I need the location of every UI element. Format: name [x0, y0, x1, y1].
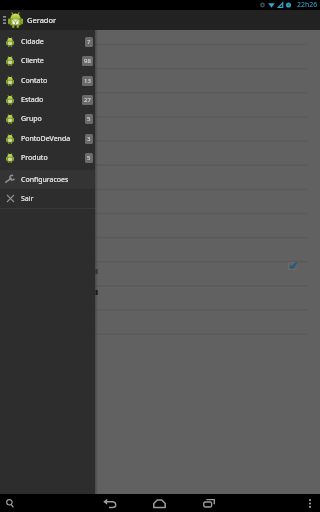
button[interactable]: Produto — [0, 148, 95, 167]
button[interactable]: Estado — [0, 90, 95, 109]
button[interactable]: Open navigation drawer — [0, 12, 8, 28]
button[interactable]: Home — [150, 494, 168, 512]
button[interactable]: Configuracoes — [0, 170, 95, 189]
staticText: Cliente — [21, 56, 44, 66]
staticText: 3 — [87, 135, 91, 143]
staticText: Gerador — [27, 15, 57, 25]
staticText: PontoDeVenda — [21, 134, 71, 144]
button[interactable]: PontoDeVenda — [0, 129, 95, 148]
button[interactable]: Cliente — [0, 51, 95, 70]
button[interactable]: Cidade — [0, 32, 95, 51]
staticText: Grupo — [21, 114, 42, 124]
button[interactable]: Back — [100, 494, 118, 512]
button[interactable]: More options — [304, 497, 316, 509]
staticText: 7 — [87, 38, 91, 46]
staticText: Configuracoes — [21, 175, 69, 185]
staticText: Contato — [21, 76, 48, 86]
button[interactable]: Grupo — [0, 109, 95, 128]
button[interactable]: Contato — [0, 71, 95, 90]
staticText: 27 — [84, 96, 91, 104]
staticText: Cidade — [21, 37, 44, 47]
staticText: 5 — [87, 154, 91, 162]
button[interactable]: Recents — [200, 494, 218, 512]
staticText: Produto — [21, 153, 48, 163]
button[interactable]: Search — [3, 496, 17, 510]
staticText: 13 — [84, 77, 91, 85]
staticText: Sair — [21, 194, 34, 204]
staticText: 22h26 — [297, 0, 318, 10]
staticText: 98 — [84, 57, 91, 65]
button[interactable]: Sair — [0, 189, 95, 208]
staticText: Estado — [21, 95, 44, 105]
staticText: 5 — [87, 115, 91, 123]
